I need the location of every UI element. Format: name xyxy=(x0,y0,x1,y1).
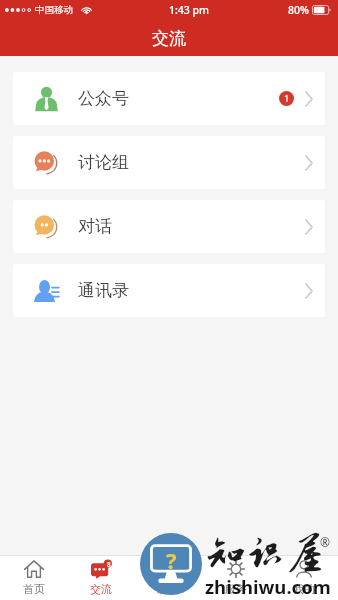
staticText: 80% xyxy=(288,3,309,17)
button[interactable]: 首页 xyxy=(0,556,67,600)
staticText: 讨论组 xyxy=(78,152,129,173)
staticText: 通讯录 xyxy=(78,280,129,301)
staticText: 首页 xyxy=(23,582,45,596)
button[interactable]: Contacts xyxy=(13,264,325,317)
staticText: 公众号 xyxy=(78,88,129,109)
button[interactable]: 8 xyxy=(67,556,134,600)
button[interactable]: Discussion groups xyxy=(13,136,325,189)
staticText: 对话 xyxy=(78,216,112,237)
staticText: ® xyxy=(320,534,330,550)
staticText: 我的 xyxy=(293,582,315,596)
staticText: 中国移动 xyxy=(35,4,73,16)
staticText: 1 xyxy=(284,92,290,105)
staticText: 知识屋 xyxy=(206,531,325,575)
staticText: 发现 xyxy=(157,582,179,596)
button[interactable]: Conversations xyxy=(13,200,325,253)
button[interactable]: 发现 xyxy=(134,556,202,600)
staticText: 交流 xyxy=(152,28,186,49)
staticText: 交流 xyxy=(90,582,112,596)
staticText: 1:43 pm xyxy=(169,3,210,17)
staticText: 8 xyxy=(107,560,111,568)
button[interactable]: Official accounts xyxy=(13,72,325,125)
button[interactable]: 我的 xyxy=(270,556,338,600)
staticText: zhishiwu.com xyxy=(205,574,331,599)
staticText: ? xyxy=(166,545,177,575)
button[interactable]: 服务 xyxy=(202,556,270,600)
staticText: 服务 xyxy=(225,582,247,596)
